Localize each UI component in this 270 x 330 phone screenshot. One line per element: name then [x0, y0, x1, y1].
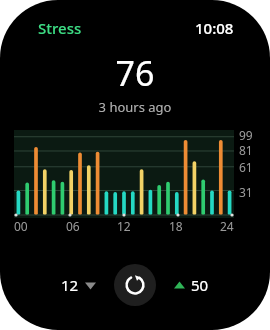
staticText: 31	[239, 184, 253, 200]
button[interactable]	[14, 130, 234, 218]
staticText: 12	[61, 275, 79, 295]
staticText: 76	[0, 50, 270, 96]
staticText: 3 hours ago	[0, 98, 270, 116]
staticText: 61	[239, 159, 253, 175]
staticText: Stress	[38, 18, 82, 38]
staticText: 06	[66, 218, 80, 234]
staticText: 24	[220, 218, 234, 234]
staticText: 18	[169, 218, 183, 234]
staticText: 50	[191, 275, 209, 295]
staticText: 81	[239, 142, 253, 158]
staticText: 12	[117, 218, 131, 234]
staticText: 00	[14, 218, 28, 234]
staticText: 10:08	[195, 18, 234, 38]
staticText: 99	[239, 127, 253, 143]
button[interactable]: Measure again	[114, 264, 156, 306]
button[interactable]: 12	[57, 271, 100, 299]
button[interactable]: 50	[170, 271, 213, 299]
